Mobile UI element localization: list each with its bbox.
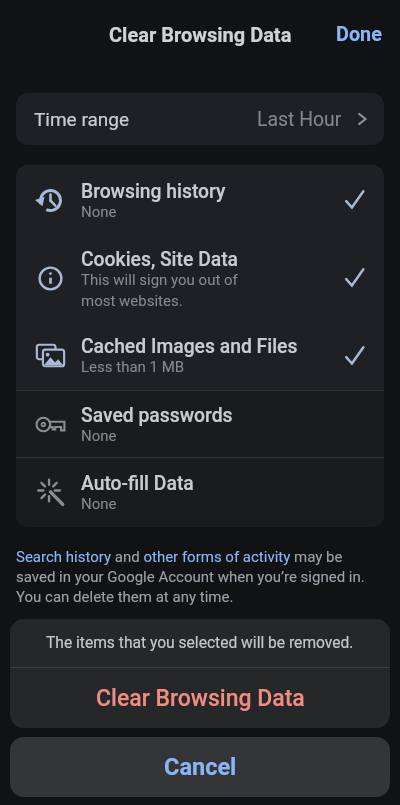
button[interactable]: Auto-fill Data — [16, 458, 384, 527]
button[interactable]: Browsing history — [16, 165, 384, 235]
staticText: Saved passwords — [81, 404, 233, 427]
button[interactable]: Cached Images and Files — [16, 321, 384, 390]
staticText: Less than 1 MB — [81, 358, 185, 376]
staticText: Cached Images and Files — [81, 335, 298, 358]
staticText: Clear Browsing Data — [96, 685, 305, 712]
button[interactable]: Time range — [16, 93, 384, 145]
staticText: Browsing history — [81, 180, 226, 203]
button[interactable]: Done — [318, 11, 400, 58]
button[interactable]: Clear Browsing Data — [10, 668, 390, 728]
staticText: Last Hour — [257, 108, 342, 131]
button[interactable]: Cookies, Site Data — [16, 235, 384, 321]
staticText: None — [81, 495, 117, 513]
staticText: None — [81, 427, 117, 445]
staticText: This will sign you out of most websites. — [81, 271, 238, 309]
staticText: Done — [336, 23, 382, 46]
staticText: Auto-fill Data — [81, 472, 194, 495]
button[interactable]: Saved passwords — [16, 391, 384, 457]
staticText: None — [81, 203, 117, 221]
staticText: Cancel — [164, 753, 237, 781]
staticText: Search history and other forms of activi… — [16, 548, 384, 605]
staticText: Time range — [34, 108, 130, 130]
staticText: Clear Browsing Data — [109, 23, 292, 46]
staticText: Cookies, Site Data — [81, 248, 239, 271]
staticText: The items that you selected will be remo… — [46, 634, 354, 652]
button[interactable]: Cancel — [10, 737, 390, 797]
